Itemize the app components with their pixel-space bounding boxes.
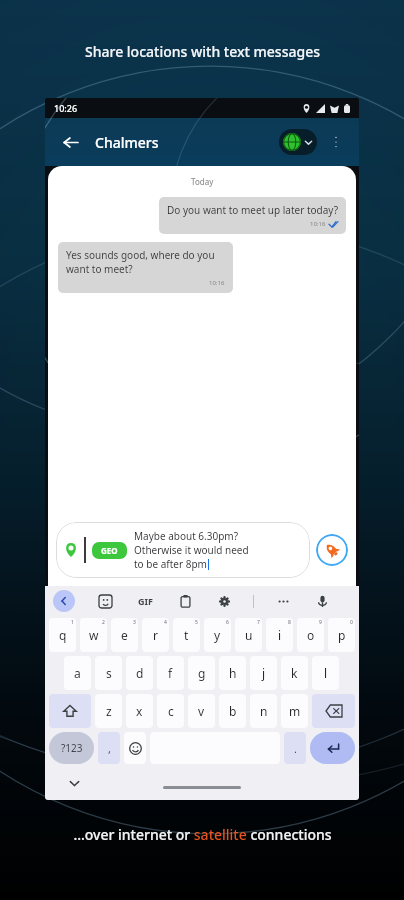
button[interactable]: l bbox=[312, 656, 339, 690]
staticText: 5 bbox=[195, 619, 198, 626]
button[interactable]: f bbox=[157, 656, 184, 690]
button[interactable]: Voice input bbox=[312, 591, 332, 611]
button[interactable]: y bbox=[204, 618, 231, 652]
button[interactable]: i bbox=[266, 618, 293, 652]
button[interactable]: Location bbox=[56, 522, 310, 578]
staticText: a bbox=[74, 665, 81, 681]
button[interactable]: v bbox=[188, 694, 215, 728]
staticText: t bbox=[184, 627, 189, 643]
staticText: k bbox=[291, 665, 298, 681]
staticText: 2 bbox=[102, 619, 105, 626]
staticText: 9 bbox=[319, 619, 322, 626]
staticText: 0 bbox=[350, 619, 353, 626]
staticText: s bbox=[106, 665, 112, 681]
button[interactable]: z bbox=[95, 694, 122, 728]
button[interactable]: Shift bbox=[49, 694, 91, 728]
button[interactable]: m bbox=[281, 694, 308, 728]
button[interactable]: w bbox=[80, 618, 107, 652]
staticText: , bbox=[108, 741, 111, 756]
staticText: c bbox=[168, 703, 174, 719]
staticText: g bbox=[198, 665, 206, 681]
button[interactable]: t bbox=[173, 618, 200, 652]
staticText: 3 bbox=[133, 619, 136, 626]
button[interactable]: Settings bbox=[214, 591, 234, 611]
staticText: . bbox=[294, 741, 297, 756]
button[interactable]: Network bbox=[279, 129, 317, 155]
button[interactable]: j bbox=[250, 656, 277, 690]
staticText: 4 bbox=[164, 619, 167, 626]
staticText: Otherwise it would need bbox=[134, 543, 249, 557]
staticText: m bbox=[289, 703, 301, 719]
staticText: 10:16 bbox=[310, 220, 326, 228]
staticText: u bbox=[245, 627, 253, 643]
button[interactable]: g bbox=[188, 656, 215, 690]
button[interactable]: d bbox=[126, 656, 153, 690]
other: Network bbox=[283, 133, 301, 151]
button[interactable]: u bbox=[235, 618, 262, 652]
button[interactable]: Back bbox=[55, 127, 85, 157]
staticText: o bbox=[307, 627, 315, 643]
staticText: 7 bbox=[257, 619, 260, 626]
staticText: 10:26 bbox=[54, 102, 78, 114]
staticText: l bbox=[324, 665, 328, 681]
other: Location bbox=[64, 543, 78, 557]
button[interactable]: Do you want to meet up later today? bbox=[159, 197, 346, 234]
staticText: w bbox=[89, 627, 99, 643]
staticText: 6 bbox=[226, 619, 229, 626]
button[interactable]: o bbox=[297, 618, 324, 652]
staticText: f bbox=[168, 665, 173, 681]
staticText: Today bbox=[191, 176, 214, 187]
button[interactable]: Send bbox=[316, 534, 348, 566]
staticText: i bbox=[278, 627, 282, 643]
button[interactable]: p bbox=[328, 618, 355, 652]
staticText: Chalmers bbox=[95, 133, 159, 152]
staticText: z bbox=[106, 703, 112, 719]
staticText: GEO bbox=[101, 545, 118, 556]
button[interactable]: More bbox=[273, 591, 293, 611]
staticText: q bbox=[59, 627, 67, 643]
button[interactable]: Emoji bbox=[124, 732, 146, 764]
staticText: b bbox=[229, 703, 237, 719]
button[interactable]: a bbox=[64, 656, 91, 690]
button[interactable]: ?123 bbox=[49, 732, 94, 764]
staticText: GIF bbox=[138, 595, 153, 607]
staticText: 1 bbox=[71, 619, 74, 626]
button[interactable]: Hide keyboard bbox=[65, 774, 83, 792]
button[interactable]: x bbox=[126, 694, 153, 728]
staticText: to be after 8pm bbox=[134, 557, 207, 571]
button[interactable]: c bbox=[157, 694, 184, 728]
staticText: d bbox=[136, 665, 144, 681]
staticText: Do you want to meet up later today? bbox=[167, 203, 338, 217]
button[interactable]: , bbox=[98, 732, 120, 764]
button[interactable]: k bbox=[281, 656, 308, 690]
staticText: h bbox=[229, 665, 237, 681]
button[interactable]: Clipboard bbox=[175, 591, 195, 611]
staticText: r bbox=[153, 627, 158, 643]
staticText: x bbox=[136, 703, 143, 719]
button[interactable]: Expand toolbar bbox=[53, 590, 75, 612]
staticText: 10:16 bbox=[209, 279, 225, 287]
staticText: ?123 bbox=[61, 741, 83, 755]
button[interactable]: Backspace bbox=[312, 694, 355, 728]
staticText: 8 bbox=[288, 619, 291, 626]
button[interactable]: Enter bbox=[310, 732, 355, 764]
button[interactable]: . bbox=[284, 732, 306, 764]
button[interactable]: More options bbox=[323, 129, 349, 155]
staticText: p bbox=[338, 627, 346, 643]
staticText: y bbox=[214, 627, 221, 643]
button[interactable]: Stickers bbox=[95, 591, 115, 611]
button[interactable]: r bbox=[142, 618, 169, 652]
staticText: …over internet or satellite connections bbox=[73, 825, 332, 844]
staticText: e bbox=[121, 627, 128, 643]
button[interactable]: n bbox=[250, 694, 277, 728]
staticText: v bbox=[198, 703, 205, 719]
button[interactable]: Yes sounds good, where do you want to me… bbox=[58, 242, 233, 293]
button[interactable]: q bbox=[49, 618, 76, 652]
button[interactable]: b bbox=[219, 694, 246, 728]
button[interactable]: e bbox=[111, 618, 138, 652]
button[interactable]: s bbox=[95, 656, 122, 690]
staticText: Share locations with text messages bbox=[85, 42, 320, 61]
button[interactable]: GIF bbox=[135, 592, 156, 610]
button[interactable]: h bbox=[219, 656, 246, 690]
